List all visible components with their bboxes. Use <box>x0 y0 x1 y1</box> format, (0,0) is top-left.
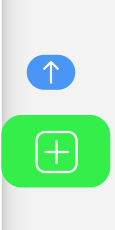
button[interactable]: Add <box>1 115 110 187</box>
button[interactable]: Scroll to top <box>27 55 75 90</box>
